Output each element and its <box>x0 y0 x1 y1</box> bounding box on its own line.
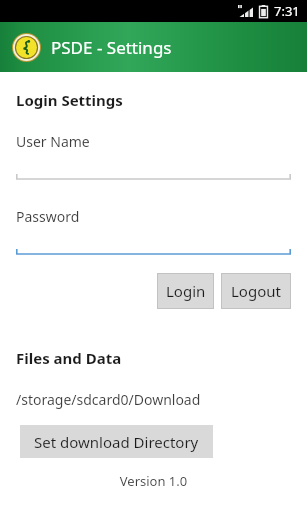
button[interactable]: Set download Directory <box>20 425 213 458</box>
staticText: Login Settings <box>16 90 123 110</box>
other: PSDE logo <box>12 33 41 62</box>
staticText: Logout <box>231 281 281 301</box>
staticText: PSDE - Settings <box>51 36 172 59</box>
staticText: Files and Data <box>16 348 122 368</box>
staticText: User Name <box>16 132 90 151</box>
staticText: Version 1.0 <box>16 472 291 490</box>
staticText: Password <box>16 207 80 226</box>
button[interactable]: Login <box>157 273 214 309</box>
staticText: 7:31 <box>274 2 300 20</box>
button[interactable]: Logout <box>221 273 291 309</box>
staticText: /storage/sdcard0/Download <box>16 390 201 409</box>
staticText: Login <box>166 281 206 301</box>
staticText: Set download Directory <box>34 432 199 452</box>
